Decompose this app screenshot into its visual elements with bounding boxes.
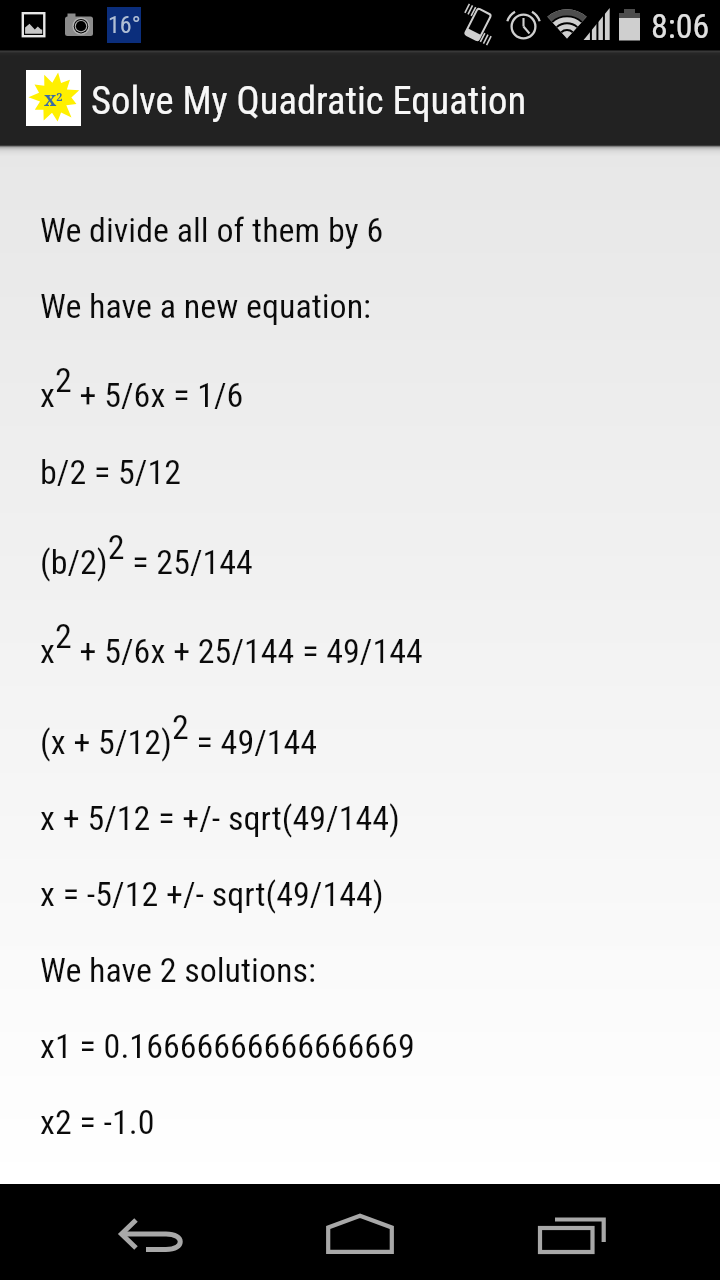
staticText: x2 + 5/6x + 25/144 = 49/144 (40, 616, 423, 671)
staticText: x2 (44, 86, 63, 112)
button[interactable]: Home (310, 1184, 410, 1280)
staticText: x + 5/12 = +/- sqrt(49/144) (40, 798, 400, 838)
button[interactable]: Recent apps (520, 1184, 630, 1280)
staticText: b/2 = 5/12 (40, 452, 182, 492)
button[interactable]: App icon (26, 70, 81, 126)
staticText: (x + 5/12)2 = 49/144 (40, 707, 318, 762)
staticText: x1 = 0.16666666666666669 (40, 1026, 415, 1066)
staticText: Solve My Quadratic Equation (91, 78, 527, 123)
staticText: We have a new equation: (40, 286, 372, 326)
button[interactable]: Back (90, 1184, 240, 1280)
staticText: x = -5/12 +/- sqrt(49/144) (40, 874, 384, 914)
staticText: 8:06 (651, 6, 710, 46)
staticText: (b/2)2 = 25/144 (40, 527, 253, 582)
staticText: x2 + 5/6x = 1/6 (40, 360, 244, 415)
staticText: x2 = -1.0 (40, 1102, 155, 1142)
staticText: We divide all of them by 6 (40, 210, 384, 250)
staticText: We have 2 solutions: (40, 950, 316, 990)
staticText: 16° (108, 11, 141, 39)
